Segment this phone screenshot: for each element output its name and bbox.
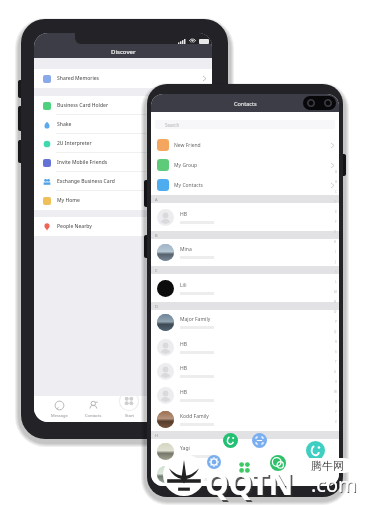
staticText: H xyxy=(334,240,337,244)
staticText: Find xyxy=(157,413,166,418)
button[interactable]: My Contacts xyxy=(151,175,339,195)
staticText: H xyxy=(155,433,158,438)
button[interactable]: Business Card Holder xyxy=(34,96,212,115)
staticText: L xyxy=(335,280,337,284)
staticText: New Friend xyxy=(174,142,201,149)
staticText: Yagi xyxy=(180,445,190,452)
staticText: .com xyxy=(311,471,357,498)
staticText: Shared Memories xyxy=(57,75,100,82)
staticText: Major Family xyxy=(180,316,211,323)
staticText: C xyxy=(155,268,158,273)
staticText: Me xyxy=(187,413,193,418)
staticText: Kodd Family xyxy=(180,413,209,420)
button[interactable]: Shared Memories xyxy=(34,69,212,88)
staticText: HB xyxy=(180,211,187,218)
button[interactable]: People Nearby xyxy=(34,217,212,236)
staticText: A xyxy=(155,197,158,202)
button[interactable]: Contacts xyxy=(85,400,102,422)
staticText: Exchange Business Card xyxy=(57,178,115,185)
staticText: E xyxy=(335,210,337,214)
staticText: F xyxy=(335,220,337,224)
staticText: Start xyxy=(125,413,134,418)
button[interactable]: Lili xyxy=(151,274,339,302)
staticText: B xyxy=(335,180,337,184)
staticText: S xyxy=(335,350,337,354)
button[interactable]: Invite Mobile Friends xyxy=(34,153,212,172)
staticText: QQTN xyxy=(205,463,294,504)
button[interactable]: Kodd Family xyxy=(151,407,339,431)
staticText: Q xyxy=(334,330,337,334)
staticText: V xyxy=(335,380,337,384)
staticText: HB xyxy=(180,365,187,372)
button[interactable]: Start xyxy=(119,391,139,422)
staticText: U xyxy=(334,370,337,374)
staticText: C xyxy=(335,190,337,194)
staticText: HB xyxy=(180,389,187,396)
button[interactable]: Message xyxy=(51,400,68,422)
staticText: Lili xyxy=(180,282,187,289)
button[interactable]: Me xyxy=(184,400,195,422)
button[interactable]: HB xyxy=(151,203,339,231)
button[interactable]: My Home xyxy=(34,191,212,210)
button[interactable]: HB xyxy=(151,359,339,383)
staticText: Search xyxy=(165,122,180,128)
staticText: T xyxy=(335,360,337,364)
button[interactable]: Exchange Business Card xyxy=(34,172,212,191)
staticText: People Nearby xyxy=(57,223,92,230)
button[interactable]: HB xyxy=(151,335,339,359)
staticText: G xyxy=(334,230,337,234)
staticText: Contacts xyxy=(85,413,102,418)
staticText: Invite Mobile Friends xyxy=(57,159,108,166)
staticText: D xyxy=(334,200,337,204)
staticText: Z xyxy=(335,420,337,424)
button[interactable]: Find xyxy=(156,400,167,422)
button[interactable]: 2U Interpreter xyxy=(34,134,212,153)
staticText: My Group xyxy=(174,162,198,169)
staticText: D xyxy=(155,304,158,309)
staticText: My Contacts xyxy=(174,182,203,189)
button[interactable]: Nico xyxy=(151,463,339,486)
staticText: Nico xyxy=(180,468,191,475)
staticText: W xyxy=(334,390,337,394)
staticText: HB xyxy=(180,341,187,348)
staticText: M xyxy=(334,290,337,294)
button[interactable]: Yagi xyxy=(151,439,339,463)
button[interactable]: New Friend xyxy=(151,135,339,155)
button[interactable]: Major Family xyxy=(151,310,339,335)
button[interactable]: HB xyxy=(151,383,339,407)
staticText: Business Card Holder xyxy=(57,102,109,109)
staticText: Message xyxy=(51,413,68,418)
button[interactable]: My Group xyxy=(151,155,339,175)
staticText: I xyxy=(335,250,337,254)
staticText: .com xyxy=(312,472,358,499)
staticText: Discover xyxy=(111,48,136,56)
staticText: 2U Interpreter xyxy=(57,140,92,147)
staticText: K xyxy=(335,270,337,274)
staticText: Contacts xyxy=(234,100,257,107)
staticText: R xyxy=(335,340,337,344)
staticText: QQTN xyxy=(207,465,296,505)
staticText: Mina xyxy=(180,246,192,253)
staticText: My Home xyxy=(57,197,80,204)
staticText: Y xyxy=(335,410,337,414)
staticText: B xyxy=(155,233,158,238)
staticText: X xyxy=(335,400,337,404)
staticText: N xyxy=(334,300,337,304)
staticText: Shake xyxy=(57,121,72,128)
staticText: 腾牛网 xyxy=(311,459,344,473)
staticText: P xyxy=(335,320,337,324)
staticText: A xyxy=(335,170,337,174)
button[interactable]: Shake xyxy=(34,115,212,134)
staticText: O xyxy=(334,310,337,314)
button[interactable]: Mina xyxy=(151,239,339,266)
